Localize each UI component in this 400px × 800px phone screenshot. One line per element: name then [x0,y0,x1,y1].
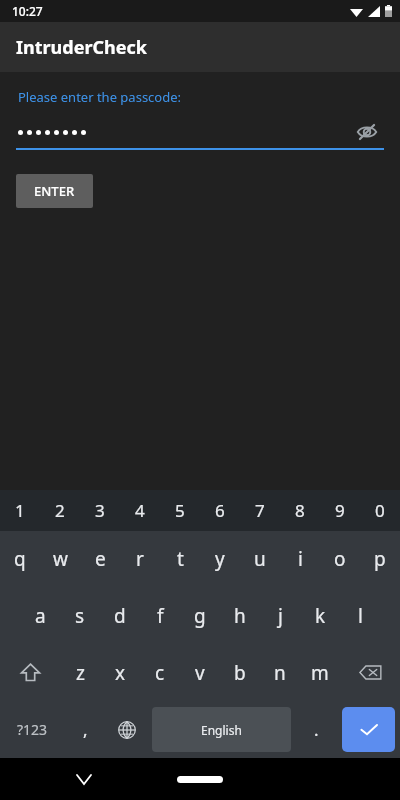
button[interactable]: 2 [40,490,80,531]
staticText: . [314,718,319,741]
staticText: m [311,660,329,686]
staticText: b [234,660,246,686]
button[interactable]: 0 [360,490,400,531]
staticText: 5 [175,499,185,522]
button[interactable]: 8 [280,490,320,531]
staticText: IntruderCheck [16,35,147,60]
staticText: 2 [55,499,65,522]
button[interactable]: Change language [106,701,148,758]
button[interactable]: n [260,644,300,701]
button[interactable]: z [60,644,100,701]
staticText: k [315,603,326,629]
button[interactable]: Show password [350,116,384,148]
button[interactable]: c [140,644,180,701]
staticText: Please enter the passcode: [18,88,182,106]
staticText: n [274,660,286,686]
button[interactable]: Home [177,776,223,783]
button[interactable]: f [140,587,180,644]
button[interactable]: 7 [240,490,280,531]
button[interactable]: Backspace [340,644,400,701]
button[interactable]: y [200,531,240,587]
staticText: 7 [255,499,265,522]
staticText: , [83,718,88,741]
staticText: r [136,546,144,572]
staticText: q [14,546,26,572]
staticText: p [374,546,386,572]
button[interactable]: , [64,701,106,758]
staticText: 0 [375,499,385,522]
staticText: u [254,546,266,572]
staticText: v [195,660,205,686]
staticText: j [278,603,283,629]
button[interactable]: l [340,587,380,644]
button[interactable]: p [360,531,400,587]
staticText: l [358,603,363,629]
button[interactable]: o [320,531,360,587]
button[interactable]: d [100,587,140,644]
button[interactable]: 9 [320,490,360,531]
button[interactable]: h [220,587,260,644]
button[interactable]: 6 [200,490,240,531]
button[interactable]: w [40,531,80,587]
staticText: h [234,603,246,629]
staticText: 9 [335,499,345,522]
staticText: ?123 [17,720,48,739]
staticText: w [53,546,68,572]
button[interactable]: ENTER [16,174,93,208]
button[interactable]: t [160,531,200,587]
staticText: t [177,546,184,572]
button[interactable]: 5 [160,490,200,531]
staticText: d [114,603,126,629]
staticText: f [157,603,164,629]
button[interactable]: ?123 [0,701,64,758]
button[interactable]: b [220,644,260,701]
button[interactable]: . [295,701,337,758]
staticText: i [298,546,303,572]
button[interactable]: u [240,531,280,587]
button[interactable]: q [0,531,40,587]
staticText: g [194,603,206,629]
button[interactable]: 1 [0,490,40,531]
staticText: 1 [15,499,25,522]
staticText: s [75,603,85,629]
staticText: 3 [95,499,105,522]
staticText: English [201,722,242,738]
button[interactable]: e [80,531,120,587]
staticText: 4 [135,499,145,522]
button[interactable]: s [60,587,100,644]
button[interactable]: 3 [80,490,120,531]
staticText: z [76,660,85,686]
button[interactable]: Enter [342,707,395,752]
staticText: x [115,660,126,686]
button[interactable]: Shift [0,644,60,701]
button[interactable]: v [180,644,220,701]
staticText: y [215,546,225,572]
button[interactable]: i [280,531,320,587]
staticText: 10:27 [12,3,43,19]
staticText: o [334,546,346,572]
button[interactable]: m [300,644,340,701]
staticText: 6 [215,499,225,522]
button[interactable]: r [120,531,160,587]
button[interactable]: a [20,587,60,644]
staticText: 8 [295,499,305,522]
staticText: c [155,660,165,686]
button[interactable]: 4 [120,490,160,531]
staticText: a [35,603,46,629]
button[interactable]: Hide keyboard [68,763,100,795]
button[interactable]: x [100,644,140,701]
button[interactable]: k [300,587,340,644]
button[interactable]: j [260,587,300,644]
button[interactable]: g [180,587,220,644]
staticText: ENTER [34,182,75,200]
button[interactable]: English [152,707,291,752]
staticText: e [95,546,106,572]
